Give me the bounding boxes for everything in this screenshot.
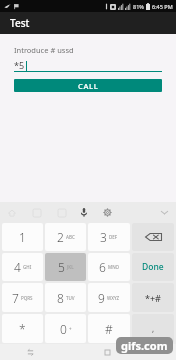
button[interactable]: ,: [132, 314, 174, 343]
staticText: *+#: [145, 292, 161, 304]
staticText: +: [69, 326, 72, 332]
staticText: JKL: [67, 264, 74, 270]
button[interactable]: 7: [2, 283, 43, 312]
staticText: 6: [99, 259, 106, 275]
staticText: MNO: [108, 264, 120, 270]
staticText: 7: [12, 290, 19, 306]
staticText: gifs.com: [121, 338, 168, 353]
staticText: Introduce # ussd: [14, 45, 74, 55]
staticText: 4: [14, 259, 21, 275]
staticText: *: [19, 321, 26, 337]
staticText: 9: [98, 290, 105, 306]
staticText: WXYZ: [107, 295, 120, 301]
button[interactable]: Done: [132, 253, 174, 281]
button[interactable]: 6: [88, 253, 130, 281]
staticText: 2: [57, 229, 64, 245]
button[interactable]: Collapse keyboard: [158, 206, 171, 219]
button[interactable]: 5: [45, 253, 86, 281]
button[interactable]: *+#: [132, 283, 174, 312]
staticText: Done: [142, 261, 164, 273]
staticText: DEF: [109, 234, 118, 240]
button[interactable]: CALL: [14, 79, 162, 92]
staticText: GHI: [23, 264, 32, 270]
button[interactable]: Recents: [99, 344, 115, 360]
button[interactable]: GIF: [55, 206, 68, 219]
button[interactable]: Back: [22, 344, 38, 360]
staticText: ABC: [66, 234, 75, 240]
button[interactable]: Stickers: [30, 206, 43, 219]
staticText: Test: [10, 16, 30, 30]
button[interactable]: 3: [88, 223, 130, 251]
staticText: PQRS: [21, 295, 33, 301]
staticText: 8: [57, 290, 64, 306]
staticText: *5: [14, 59, 25, 71]
staticText: CALL: [78, 81, 99, 91]
button[interactable]: *5: [14, 58, 162, 71]
staticText: 3: [100, 229, 107, 245]
button[interactable]: Home: [5, 206, 18, 219]
button[interactable]: 9: [88, 283, 130, 312]
staticText: 1: [19, 229, 26, 245]
staticText: 5: [58, 259, 65, 275]
button[interactable]: 4: [2, 253, 43, 281]
staticText: 0: [60, 321, 67, 337]
staticText: #: [105, 321, 113, 337]
staticText: ,: [152, 323, 155, 334]
staticText: TUV: [66, 295, 75, 301]
button[interactable]: Settings: [101, 206, 114, 219]
button[interactable]: gifs.com: [116, 337, 173, 354]
button[interactable]: Backspace: [132, 223, 174, 251]
staticText: 81%: [133, 3, 144, 10]
button[interactable]: *: [2, 314, 43, 343]
staticText: 6:45 PM: [152, 3, 173, 10]
button[interactable]: 0: [45, 314, 86, 343]
button[interactable]: 1: [2, 223, 43, 251]
button[interactable]: Voice input: [77, 206, 90, 219]
button[interactable]: 2: [45, 223, 86, 251]
button[interactable]: 8: [45, 283, 86, 312]
button[interactable]: #: [88, 314, 130, 343]
